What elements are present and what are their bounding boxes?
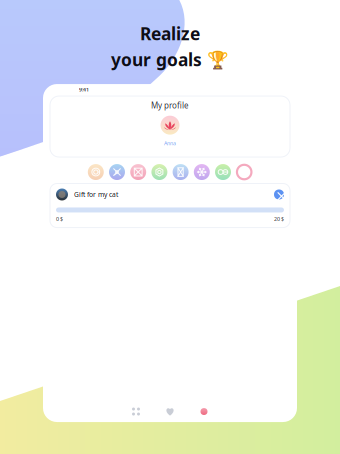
button[interactable]: Anna: [164, 140, 176, 147]
button[interactable]: Profile: [199, 407, 208, 416]
button[interactable]: Favourites: [165, 407, 174, 416]
button[interactable]: Badge 1: [88, 164, 104, 180]
button[interactable]: Badge 3: [130, 164, 146, 180]
staticText: My profile: [151, 100, 189, 111]
staticText: Anna: [164, 140, 176, 147]
staticText: 20 $: [274, 215, 284, 223]
button[interactable]: Badge 2: [109, 164, 125, 180]
button[interactable]: Dashboard: [131, 407, 140, 416]
button[interactable]: Badge 5: [173, 164, 189, 180]
button[interactable]: Badge 4: [151, 164, 167, 180]
button[interactable]: Remove goal: [274, 189, 284, 199]
button[interactable]: Badge 7: [215, 164, 231, 180]
button[interactable]: Badge 6: [194, 164, 210, 180]
staticText: 9:41: [79, 86, 89, 93]
button[interactable]: Badge 8: [236, 164, 252, 180]
staticText: Realize: [140, 22, 200, 45]
staticText: Gift for my cat: [74, 190, 118, 199]
staticText: 0 $: [56, 215, 63, 223]
staticText: your goals 🏆: [111, 48, 229, 71]
